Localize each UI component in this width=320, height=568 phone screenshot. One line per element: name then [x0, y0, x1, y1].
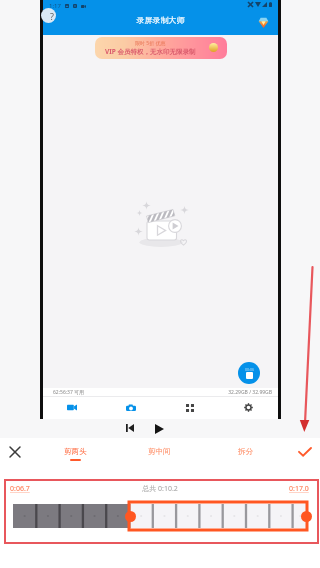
staticText: 0:17.0	[289, 484, 309, 494]
button[interactable]: Confirm	[293, 440, 317, 464]
staticText: 总共 0:10.2	[0, 484, 320, 494]
staticText: 限时 5折 优惠	[135, 40, 166, 47]
staticText: 0:06.7	[10, 484, 30, 494]
staticText: ?	[50, 10, 54, 22]
button[interactable]: 剪两头	[54, 439, 96, 469]
staticText: 剪两头	[64, 447, 87, 456]
button[interactable]: Stop recording	[238, 362, 260, 384]
button[interactable]: Help	[41, 8, 56, 23]
staticText: 拆分	[238, 447, 253, 456]
button[interactable]: Play	[151, 420, 168, 437]
staticText: 62:56:37 可用	[53, 389, 85, 396]
staticText: 32.29GB / 32.99GB	[37, 389, 272, 396]
staticText: 剪中间	[148, 447, 171, 456]
staticText: 00:06	[245, 367, 254, 372]
button[interactable]: Previous	[122, 420, 138, 436]
staticText: 录屏录制大师	[43, 15, 278, 25]
button[interactable]: 拆分	[224, 439, 266, 469]
button[interactable]: VIP	[255, 14, 271, 30]
button[interactable]: 剪中间	[138, 439, 180, 469]
button[interactable]: Screenshot	[101, 396, 160, 419]
button[interactable]: Record	[43, 396, 101, 419]
button[interactable]: Cancel	[3, 440, 27, 464]
button[interactable]: Go	[209, 43, 218, 52]
staticText: VIP 会员特权，无水印无限录制	[105, 47, 196, 56]
staticText: 1:17	[49, 2, 61, 10]
button[interactable]: Settings	[219, 396, 278, 419]
button[interactable]: 限时 5折 优惠	[95, 37, 227, 59]
button[interactable]: Tools	[160, 396, 219, 419]
